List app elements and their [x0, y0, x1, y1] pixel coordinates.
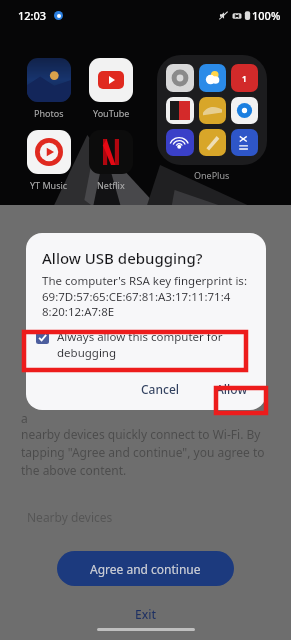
- button[interactable]: Allow: [204, 374, 260, 404]
- staticText: Allow USB debugging?: [42, 248, 203, 268]
- staticText: Netflix: [97, 179, 125, 191]
- staticText: Allow: [216, 381, 248, 397]
- staticText: Photos: [34, 107, 64, 119]
- staticText: The computer's RSA key fingerprint is: 6…: [42, 273, 247, 319]
- staticText: 100%: [252, 8, 281, 23]
- button[interactable]: Photos: [27, 58, 71, 119]
- button[interactable]: Netflix: [89, 130, 133, 191]
- staticText: 12:03: [18, 8, 47, 23]
- button[interactable]: Cancel: [131, 374, 190, 404]
- staticText: OnePlus: [194, 169, 230, 181]
- staticText: Always allow this computer for debugging: [57, 329, 256, 360]
- staticText: nearby devices quickly connect to Wi-Fi.…: [21, 426, 270, 479]
- staticText: Nearby devices: [27, 509, 113, 525]
- staticText: Agree and continue: [90, 561, 201, 577]
- staticText: YT Music: [30, 179, 68, 191]
- staticText: Cancel: [141, 381, 180, 397]
- staticText: 1: [242, 73, 247, 84]
- staticText: Exit: [135, 606, 157, 622]
- button[interactable]: Always allow this computer for debugging: [36, 329, 256, 360]
- button[interactable]: YouTube: [89, 58, 133, 119]
- button[interactable]: 1: [157, 55, 267, 181]
- button[interactable]: Exit: [115, 600, 177, 628]
- button[interactable]: YT Music: [27, 130, 71, 191]
- staticText: YouTube: [93, 107, 130, 119]
- button[interactable]: Agree and continue: [57, 551, 234, 586]
- staticText: a: [21, 410, 28, 426]
